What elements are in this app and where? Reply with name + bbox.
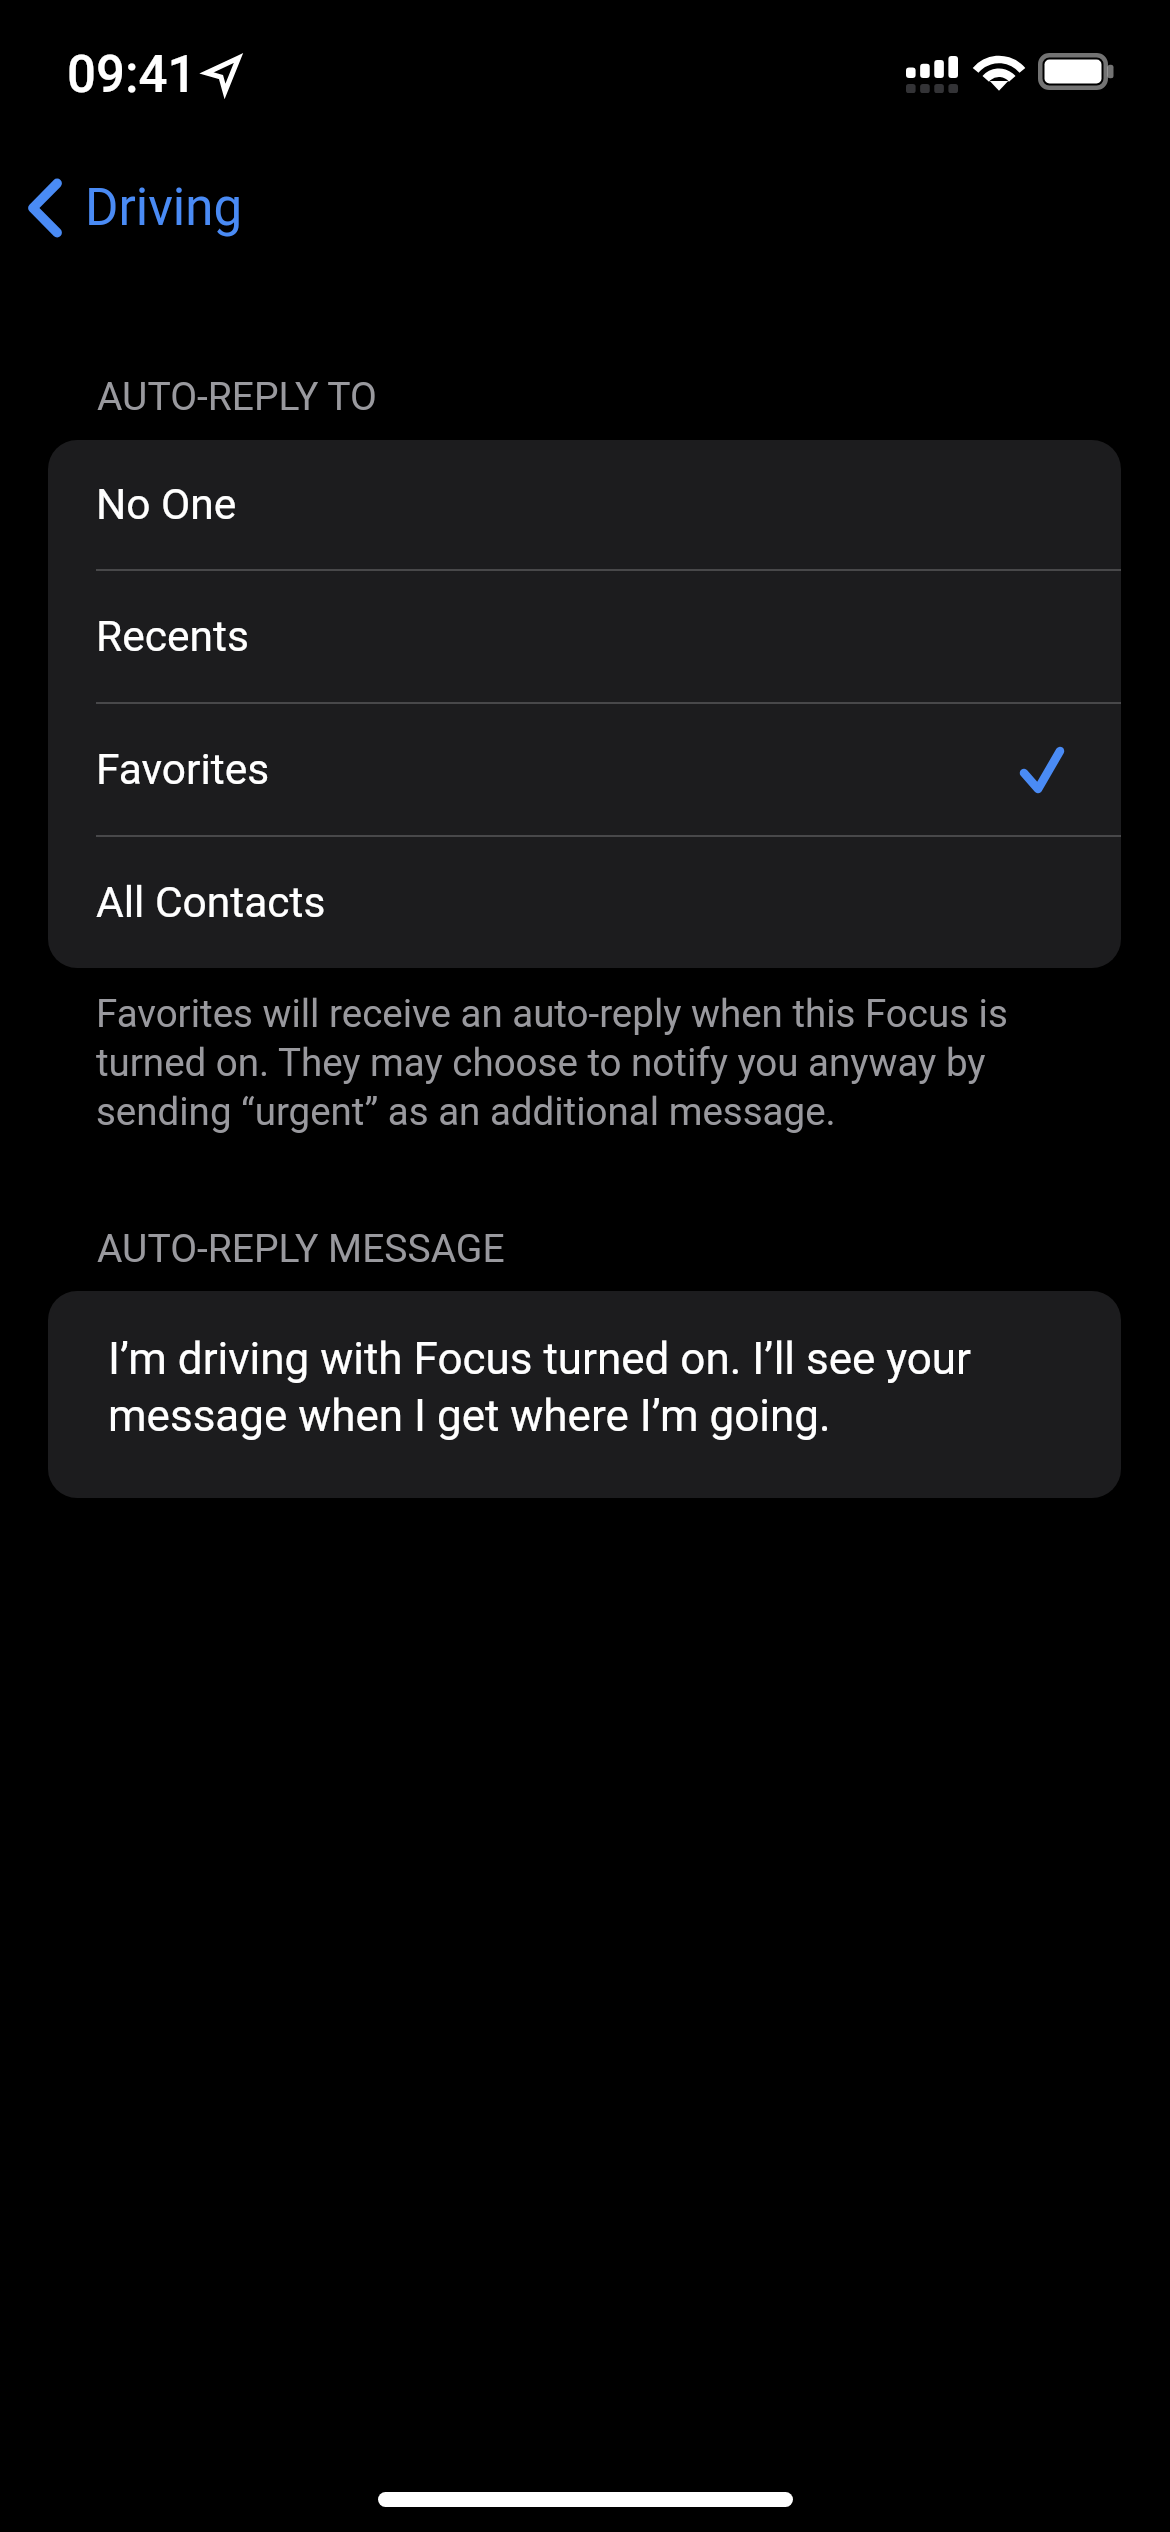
button[interactable]: No One (48, 440, 1121, 569)
button[interactable]: All Contacts (48, 837, 1121, 968)
button[interactable]: Back to Driving (4, 152, 263, 264)
staticText: AUTO-REPLY MESSAGE (97, 1226, 505, 1272)
staticText: I’m driving with Focus turned on. I’ll s… (108, 1329, 1038, 1443)
button[interactable]: Favorites (48, 704, 1121, 835)
staticText: Favorites (96, 745, 270, 795)
staticText: AUTO-REPLY TO (97, 374, 377, 420)
staticText: Favorites will receive an auto-reply whe… (96, 988, 1031, 1135)
staticText: 09:41 (67, 45, 197, 105)
staticText: All Contacts (96, 878, 326, 928)
staticText: No One (96, 480, 237, 530)
staticText: Driving (85, 178, 243, 238)
staticText: Recents (96, 612, 249, 662)
button[interactable]: Recents (48, 571, 1121, 702)
